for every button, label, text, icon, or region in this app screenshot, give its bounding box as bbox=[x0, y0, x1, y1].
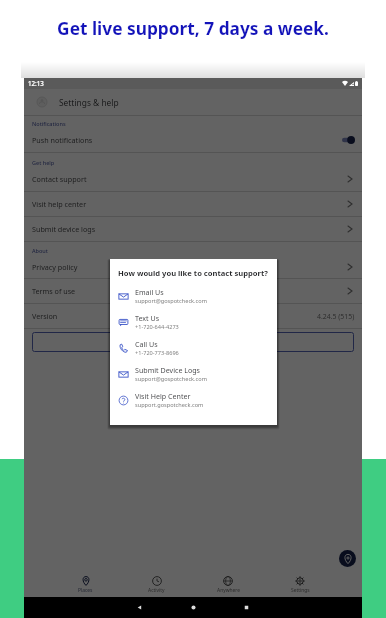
staticText: Email Us bbox=[135, 287, 164, 297]
staticText: Submit Device Logs bbox=[135, 365, 200, 375]
button[interactable]: Text Us bbox=[118, 309, 273, 335]
staticText: Call Us bbox=[135, 339, 158, 349]
button[interactable]: Call Us bbox=[118, 335, 273, 361]
button[interactable]: Activity bbox=[121, 572, 192, 598]
staticText: support@gospotcheck.com bbox=[135, 375, 207, 383]
staticText: Contact support bbox=[32, 174, 87, 184]
button[interactable]: Contact support bbox=[24, 167, 362, 191]
staticText: About bbox=[32, 247, 48, 254]
staticText: How would you like to contact support? bbox=[118, 268, 268, 278]
button[interactable]: Places bbox=[50, 572, 121, 598]
staticText: support@gospotcheck.com bbox=[135, 297, 207, 305]
staticText: +1-720-773-8696 bbox=[135, 349, 179, 357]
staticText: Terms of use bbox=[32, 286, 76, 296]
button[interactable]: Version bbox=[24, 304, 362, 328]
staticText: 12:13 bbox=[28, 79, 44, 87]
staticText: Version bbox=[32, 311, 58, 321]
button[interactable]: Profile bbox=[35, 95, 49, 109]
staticText: support.gospotcheck.com bbox=[135, 401, 204, 409]
staticText: Places bbox=[78, 587, 93, 594]
staticText: Anywhere bbox=[217, 587, 240, 594]
button[interactable]: Settings bbox=[264, 572, 336, 598]
staticText: Activity bbox=[148, 587, 165, 594]
other: Back bbox=[136, 604, 143, 611]
staticText: +1-720-644-4273 bbox=[135, 323, 179, 331]
button[interactable] bbox=[32, 332, 354, 352]
staticText: Get live support, 7 days a week. bbox=[0, 17, 386, 41]
staticText: Notifications bbox=[32, 120, 66, 127]
button[interactable]: Submit device logs bbox=[24, 217, 362, 241]
button[interactable]: Visit help center bbox=[24, 192, 362, 216]
button[interactable]: Visit Help Center bbox=[118, 387, 273, 413]
staticText: Get help bbox=[32, 159, 55, 166]
staticText: Settings & help bbox=[59, 97, 119, 108]
button[interactable]: Email Us bbox=[118, 283, 273, 309]
other: Recents bbox=[243, 604, 250, 611]
staticText: Settings bbox=[291, 587, 310, 594]
button[interactable]: Anywhere bbox=[192, 572, 264, 598]
staticText: Submit device logs bbox=[32, 224, 96, 234]
other: Home bbox=[190, 604, 197, 611]
button[interactable]: Submit Device Logs bbox=[118, 361, 273, 387]
staticText: Visit Help Center bbox=[135, 391, 191, 401]
button[interactable]: Push notifications bbox=[24, 128, 362, 152]
staticText: 4.24.5 (515) bbox=[317, 312, 355, 321]
staticText: Privacy policy bbox=[32, 262, 78, 272]
staticText: Push notifications bbox=[32, 135, 93, 145]
staticText: Text Us bbox=[135, 313, 160, 323]
staticText: Visit help center bbox=[32, 199, 87, 209]
button[interactable]: Privacy policy bbox=[24, 255, 362, 278]
button[interactable]: Add place bbox=[339, 550, 356, 567]
button[interactable]: Terms of use bbox=[24, 279, 362, 303]
